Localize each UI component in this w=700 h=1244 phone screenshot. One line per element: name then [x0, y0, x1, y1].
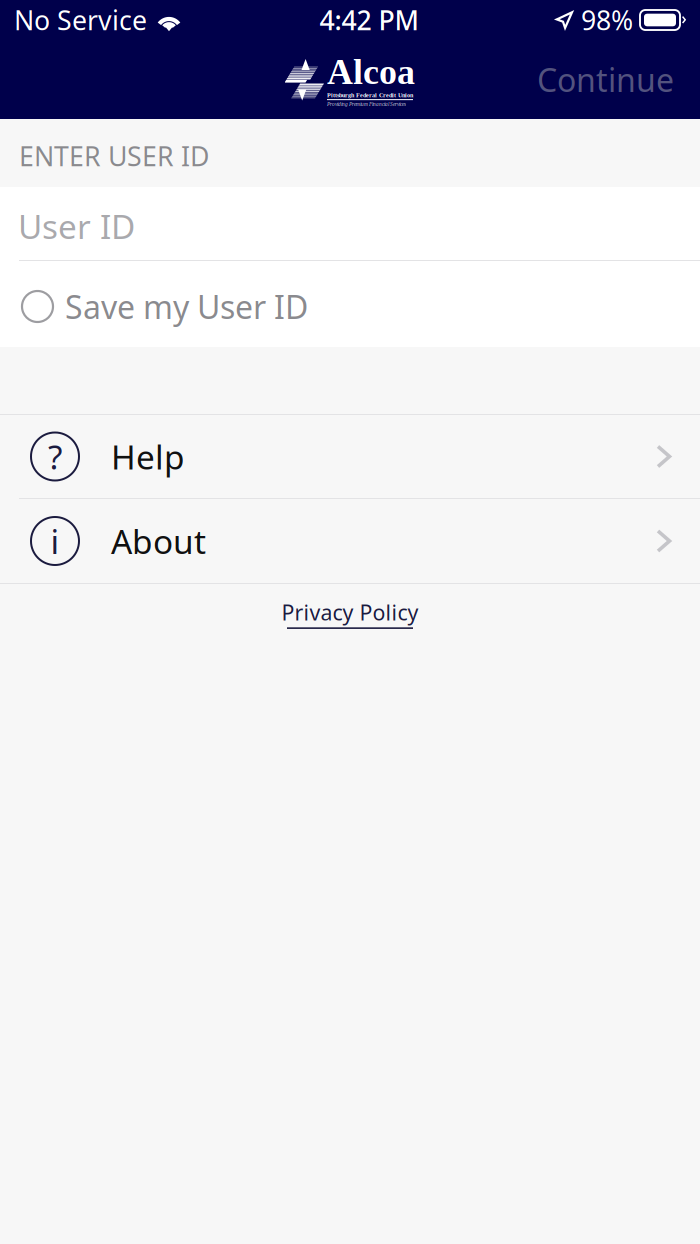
staticText: Providing Premium Financial Services [327, 101, 406, 107]
staticText: Pittsburgh Federal Credit Union [327, 92, 413, 99]
staticText: 98% [581, 2, 633, 38]
button[interactable]: i [0, 499, 700, 583]
button[interactable]: Privacy Policy [261, 584, 438, 641]
button[interactable]: Save my User ID [0, 261, 700, 347]
staticText: Help [111, 434, 185, 479]
staticText: About [111, 519, 206, 563]
staticText: 4:42 PM [319, 2, 418, 38]
staticText: Privacy Policy [281, 598, 418, 626]
staticText: Alcoa [327, 52, 415, 92]
staticText: Continue [537, 58, 674, 101]
button[interactable]: ? [0, 415, 700, 498]
staticText: No Service [14, 2, 147, 38]
staticText: i [50, 519, 59, 563]
button[interactable]: User ID [0, 187, 700, 260]
staticText: ENTER USER ID [19, 138, 209, 174]
button[interactable]: Continue [519, 47, 700, 112]
staticText: Save my User ID [65, 285, 308, 328]
staticText: User ID [18, 204, 135, 248]
staticText: ? [48, 434, 62, 479]
